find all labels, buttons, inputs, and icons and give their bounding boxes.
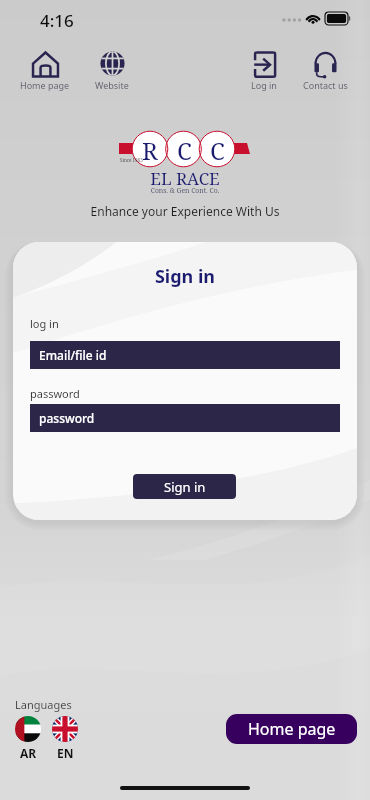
staticText: C bbox=[210, 134, 225, 166]
staticText: Sign in bbox=[13, 264, 357, 289]
staticText: Enhance your Experience With Us bbox=[0, 203, 370, 219]
staticText: R bbox=[142, 134, 158, 166]
staticText: Home page bbox=[20, 79, 70, 91]
staticText: 4:16 bbox=[40, 9, 74, 32]
staticText: Home page bbox=[248, 718, 336, 740]
staticText: EL RACE bbox=[0, 167, 370, 190]
staticText: log in bbox=[30, 316, 59, 331]
button[interactable]: AR bbox=[15, 716, 41, 761]
staticText: Contact us bbox=[303, 79, 348, 91]
button[interactable]: Email/file id bbox=[30, 341, 340, 369]
staticText: C bbox=[177, 134, 192, 166]
staticText: Since 1983 bbox=[120, 157, 143, 163]
staticText: EN bbox=[57, 745, 74, 761]
button[interactable]: Sign in bbox=[133, 474, 236, 499]
staticText: Website bbox=[95, 79, 129, 91]
staticText: Log in bbox=[251, 79, 277, 91]
button[interactable]: Contact us bbox=[288, 50, 362, 91]
button[interactable]: EN bbox=[52, 716, 78, 761]
staticText: password bbox=[30, 386, 80, 401]
button[interactable]: Website bbox=[75, 50, 149, 91]
staticText: AR bbox=[20, 745, 37, 761]
staticText: Languages bbox=[15, 697, 72, 712]
staticText: Cons. & Gen Cont. Co. bbox=[0, 186, 370, 195]
button[interactable]: Home page bbox=[226, 714, 357, 744]
button[interactable]: password bbox=[30, 404, 340, 432]
staticText: Sign in bbox=[164, 478, 206, 496]
button[interactable]: Log in bbox=[226, 50, 300, 91]
staticText: password bbox=[39, 410, 95, 426]
button[interactable]: Home page bbox=[8, 50, 82, 91]
staticText: Email/file id bbox=[39, 347, 107, 363]
